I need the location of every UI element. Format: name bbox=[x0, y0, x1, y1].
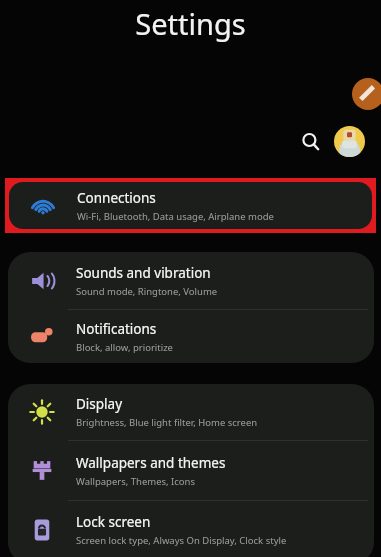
button[interactable]: Profile bbox=[334, 126, 365, 157]
button[interactable]: Sounds and vibration bbox=[8, 252, 374, 309]
button[interactable]: Search bbox=[295, 126, 327, 158]
staticText: Brightness, Blue light filter, Home scre… bbox=[76, 416, 258, 429]
button[interactable]: Connections bbox=[9, 182, 372, 229]
button[interactable]: Display bbox=[8, 384, 374, 440]
button[interactable]: Lock screen bbox=[8, 501, 374, 557]
staticText: Block, allow, prioritize bbox=[76, 341, 173, 354]
staticText: Screen lock type, Always On Display, Clo… bbox=[76, 534, 287, 547]
staticText: Notifications bbox=[76, 320, 157, 338]
staticText: Wi-Fi, Bluetooth, Data usage, Airplane m… bbox=[77, 210, 274, 223]
staticText: Wallpapers, Themes, Icons bbox=[76, 475, 196, 488]
staticText: Settings bbox=[0, 4, 381, 43]
staticText: Display bbox=[76, 395, 123, 413]
staticText: Sounds and vibration bbox=[76, 264, 211, 282]
button[interactable]: Wallpapers and themes bbox=[8, 441, 374, 500]
staticText: Wallpapers and themes bbox=[76, 454, 226, 472]
staticText: Lock screen bbox=[76, 513, 151, 531]
staticText: Sound mode, Ringtone, Volume bbox=[76, 285, 218, 298]
staticText: Connections bbox=[77, 189, 156, 207]
button[interactable]: Notifications bbox=[8, 310, 374, 363]
